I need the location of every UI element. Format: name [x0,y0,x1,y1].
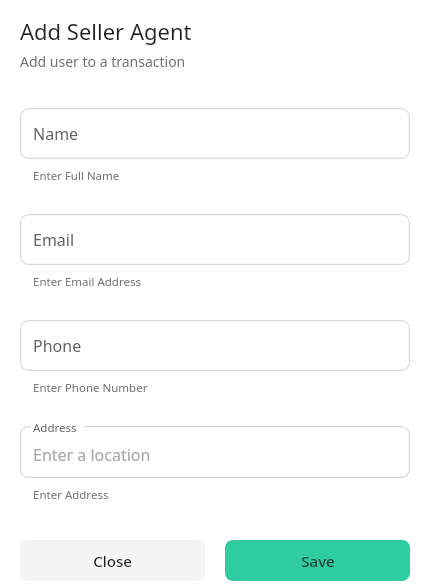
staticText: Address [33,420,77,436]
button[interactable]: Close [20,540,205,581]
staticText: Enter Full Name [33,168,120,184]
button[interactable]: Name [20,108,410,159]
staticText: Save [301,551,335,571]
staticText: Enter Email Address [33,274,141,290]
staticText: Enter Address [33,487,109,503]
staticText: Phone [33,335,82,357]
staticText: Add user to a transaction [20,52,186,71]
staticText: Enter a location [33,444,151,466]
staticText: Close [93,551,132,571]
button[interactable]: Phone [20,320,410,371]
button[interactable]: Email [20,214,410,265]
button[interactable]: Address [20,426,410,478]
staticText: Enter Phone Number [33,380,148,396]
staticText: Email [33,229,75,251]
button[interactable]: Save [225,540,410,581]
staticText: Name [33,123,79,145]
staticText: Add Seller Agent [20,16,192,46]
